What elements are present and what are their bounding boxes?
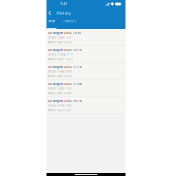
staticText: Motor Over 3040 xyxy=(48,91,72,95)
button[interactable]: 24 August 2022 12:07 xyxy=(46,29,125,46)
staticText: History xyxy=(57,10,71,16)
button[interactable]: 24 August 2022 12:10 xyxy=(46,46,125,63)
staticText: 9:41 xyxy=(60,2,67,6)
staticText: 24 August 2022 18:16 xyxy=(48,99,82,102)
button[interactable]: OPEN xyxy=(47,18,56,29)
staticText: 24 August 2022 17:34 xyxy=(48,82,82,85)
staticText: 24 August 2022 17:18 xyxy=(48,65,82,68)
button[interactable]: COMPLETE xyxy=(56,18,81,29)
staticText: Motor Out 4190 xyxy=(48,108,71,112)
staticText: Motor Over 2908 xyxy=(48,74,72,78)
staticText: Single Drive 386 xyxy=(48,104,72,107)
button[interactable]: Back xyxy=(46,8,57,17)
staticText: OPEN xyxy=(48,19,55,23)
staticText: 24 August 2022 12:10 xyxy=(48,48,82,51)
staticText: Motor Drive 1003 xyxy=(48,57,73,61)
staticText: Single Cycle 140 xyxy=(48,87,72,90)
staticText: COMPLETE xyxy=(62,19,75,23)
button[interactable]: 24 August 2022 17:18 xyxy=(46,63,125,80)
staticText: 24 August 2022 12:07 xyxy=(48,31,82,34)
staticText: Motor Over 3920 xyxy=(48,40,72,44)
staticText: Single Pump 970 xyxy=(48,53,73,56)
staticText: Single Valve 840 xyxy=(48,70,72,73)
button[interactable]: 24 August 2022 18:16 xyxy=(46,97,125,114)
button[interactable]: 24 August 2022 17:34 xyxy=(46,80,125,97)
staticText: Single Cycle 125 xyxy=(48,36,72,39)
